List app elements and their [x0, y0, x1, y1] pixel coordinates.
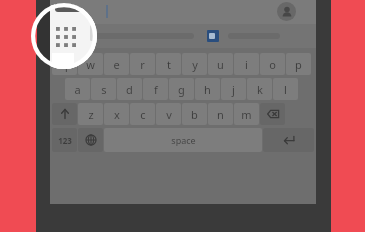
button[interactable]: s [91, 78, 116, 100]
staticText: b [191, 107, 198, 122]
staticText: l [284, 82, 287, 97]
button[interactable]: g [169, 78, 194, 100]
staticText: k [257, 82, 263, 97]
button[interactable]: Shift [52, 103, 77, 125]
staticText: x [114, 107, 120, 122]
button[interactable]: Account [50, 0, 316, 24]
button[interactable]: w [78, 53, 103, 75]
button[interactable]: 123 [52, 128, 77, 152]
button[interactable]: r [130, 53, 155, 75]
button[interactable]: space [104, 128, 262, 152]
button[interactable]: j [221, 78, 246, 100]
staticText: e [113, 57, 120, 72]
button[interactable]: u [208, 53, 233, 75]
button[interactable]: Change keyboard language [78, 128, 103, 152]
button[interactable]: l [273, 78, 298, 100]
staticText: space [171, 134, 196, 146]
staticText: c [140, 107, 146, 122]
button[interactable]: y [182, 53, 207, 75]
button[interactable]: h [195, 78, 220, 100]
button[interactable]: d [117, 78, 142, 100]
button[interactable]: t [156, 53, 181, 75]
button[interactable]: Enter [263, 128, 314, 152]
button[interactable]: Magnified app drawer icon [31, 3, 97, 69]
button[interactable]: x [104, 103, 129, 125]
staticText: h [204, 82, 211, 97]
button[interactable]: v [156, 103, 181, 125]
staticText: y [192, 57, 198, 72]
button[interactable]: Backspace [260, 103, 285, 125]
staticText: f [154, 82, 158, 97]
staticText: i [245, 57, 248, 72]
button[interactable]: n [208, 103, 233, 125]
staticText: n [217, 107, 224, 122]
button[interactable]: k [247, 78, 272, 100]
button[interactable]: i [234, 53, 259, 75]
button[interactable]: Outlook [207, 30, 219, 42]
staticText: z [88, 107, 94, 122]
staticText: r [140, 57, 145, 72]
button[interactable]: a [65, 78, 90, 100]
staticText: w [86, 57, 95, 72]
staticText: u [217, 57, 224, 72]
button[interactable]: o [260, 53, 285, 75]
button[interactable]: b [182, 103, 207, 125]
button[interactable]: z [78, 103, 103, 125]
staticText: o [269, 57, 276, 72]
staticText: m [241, 107, 252, 122]
staticText: s [101, 82, 107, 97]
staticText: d [126, 82, 133, 97]
button[interactable]: c [130, 103, 155, 125]
staticText: 123 [58, 135, 72, 146]
staticText: v [166, 107, 172, 122]
staticText: q [61, 57, 68, 72]
button[interactable]: f [143, 78, 168, 100]
button[interactable]: m [234, 103, 259, 125]
button[interactable]: q [52, 53, 77, 75]
staticText: a [74, 82, 81, 97]
staticText: p [295, 57, 302, 72]
button[interactable]: p [286, 53, 311, 75]
staticText: j [232, 82, 235, 97]
button[interactable]: e [104, 53, 129, 75]
button[interactable]: Account [277, 2, 296, 21]
staticText: g [178, 82, 185, 97]
staticText: t [167, 57, 171, 72]
